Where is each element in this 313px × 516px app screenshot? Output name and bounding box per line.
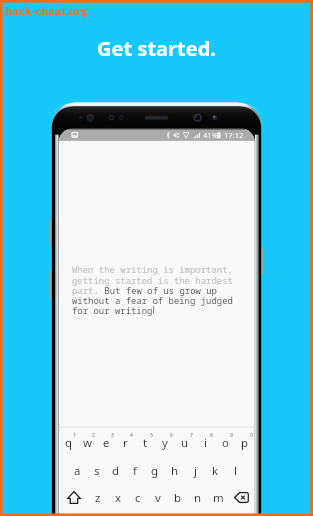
staticText: l — [234, 463, 237, 479]
button[interactable]: y — [155, 432, 175, 448]
staticText: k — [212, 463, 219, 479]
button[interactable]: o — [215, 432, 235, 448]
button[interactable]: e — [97, 432, 116, 448]
staticText: part. — [72, 284, 99, 296]
button[interactable]: k — [205, 462, 225, 478]
staticText: b — [174, 490, 182, 506]
staticText: r — [123, 435, 128, 451]
button[interactable]: f — [125, 462, 145, 478]
button[interactable]: d — [106, 462, 125, 478]
staticText: Get started. — [0, 35, 313, 62]
staticText: 9 — [230, 432, 233, 439]
button[interactable]: c — [128, 489, 148, 505]
button[interactable]: j — [185, 462, 205, 478]
button[interactable]: x — [108, 489, 128, 505]
staticText: m — [213, 490, 224, 506]
staticText: y — [162, 435, 168, 451]
staticText: d — [112, 463, 120, 479]
staticText: But few of us grow up — [99, 284, 217, 296]
staticText: u — [181, 435, 189, 451]
staticText: q — [65, 435, 73, 451]
staticText: n — [194, 490, 202, 506]
staticText: 7 — [190, 432, 193, 439]
button[interactable]: s — [87, 462, 106, 478]
staticText: p — [241, 435, 249, 451]
staticText: t — [143, 435, 148, 451]
staticText: without a fear of being judged — [72, 294, 233, 306]
button[interactable]: z — [88, 489, 108, 505]
staticText: 5 — [150, 432, 153, 439]
staticText: j — [194, 463, 197, 479]
button[interactable]: i — [195, 432, 215, 448]
staticText: 8 — [210, 432, 213, 439]
button[interactable]: w — [78, 432, 97, 448]
staticText: 4 — [130, 432, 133, 439]
staticText: 0 — [250, 432, 253, 439]
staticText: v — [155, 490, 161, 506]
staticText: o — [222, 435, 229, 451]
button[interactable]: v — [148, 489, 168, 505]
staticText: w — [83, 435, 92, 451]
button[interactable]: l — [225, 462, 245, 478]
staticText: g — [151, 463, 159, 479]
staticText: i — [204, 435, 207, 451]
button[interactable]: b — [168, 489, 188, 505]
staticText: c — [135, 490, 141, 506]
staticText: for our writing — [72, 304, 153, 316]
staticText: e — [103, 435, 110, 451]
button[interactable]: q — [59, 432, 78, 448]
staticText: 41% — [203, 130, 218, 140]
staticText: getting started is the hardest — [72, 274, 233, 286]
button[interactable]: m — [208, 489, 228, 505]
button[interactable]: Backspace — [228, 489, 255, 505]
button[interactable]: n — [188, 489, 208, 505]
staticText: a — [74, 463, 81, 479]
button[interactable]: r — [116, 432, 135, 448]
button[interactable]: a — [68, 462, 87, 478]
staticText: hack-cheat.org — [5, 3, 88, 18]
staticText: s — [94, 463, 100, 479]
staticText: f — [133, 463, 137, 479]
button[interactable]: u — [175, 432, 195, 448]
staticText: z — [95, 490, 101, 506]
staticText: 1 — [73, 432, 76, 439]
staticText: 17:12 — [224, 130, 244, 140]
staticText: x — [115, 490, 122, 506]
staticText: When the writing is important, — [72, 263, 233, 275]
staticText: h — [171, 463, 179, 479]
staticText: 6 — [170, 432, 173, 439]
button[interactable]: Shift — [59, 489, 88, 505]
staticText: 2 — [92, 432, 95, 439]
button[interactable]: h — [165, 462, 185, 478]
button[interactable]: t — [135, 432, 155, 448]
staticText: 3 — [111, 432, 114, 439]
button[interactable]: g — [145, 462, 165, 478]
button[interactable]: p — [235, 432, 255, 448]
